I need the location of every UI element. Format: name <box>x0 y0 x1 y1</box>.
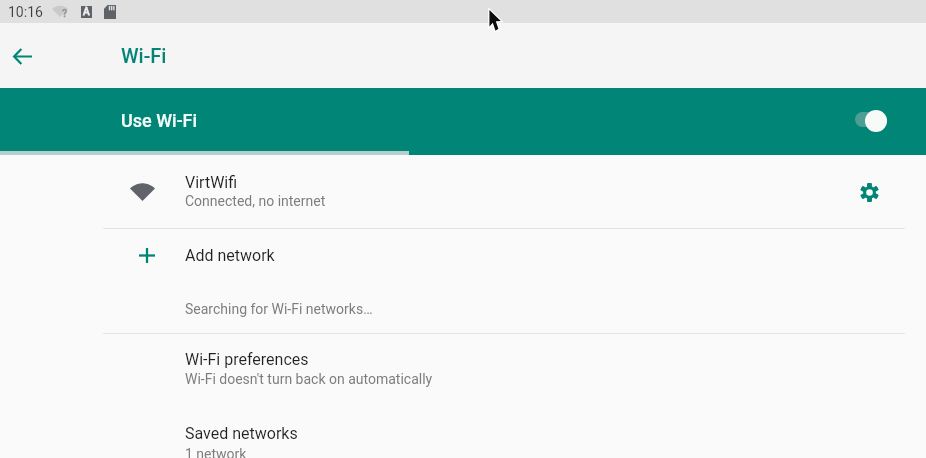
staticText: Searching for Wi-Fi networks… <box>185 301 373 317</box>
button[interactable]: Network settings <box>851 174 888 211</box>
button[interactable]: VirtWifi <box>0 155 926 229</box>
button[interactable]: Wi-Fi preferences <box>0 334 926 406</box>
staticText: Use Wi-Fi <box>121 110 198 131</box>
staticText: Connected, no internet <box>185 193 326 209</box>
staticText: 10:16 <box>8 4 43 20</box>
staticText: Wi-Fi preferences <box>185 350 309 369</box>
button[interactable]: Navigate up <box>2 36 42 76</box>
staticText: Add network <box>185 246 275 265</box>
button[interactable]: Wi-Fi toggle <box>845 103 897 139</box>
button[interactable]: Use Wi-Fi <box>0 88 926 155</box>
staticText: Saved networks <box>185 424 298 443</box>
button[interactable]: Add network <box>0 229 926 286</box>
staticText: A <box>83 6 90 18</box>
button[interactable]: Saved networks <box>0 407 926 458</box>
staticText: 1 network <box>185 446 247 458</box>
staticText: ? <box>62 7 68 20</box>
staticText: Wi-Fi <box>121 44 167 67</box>
staticText: Wi-Fi doesn't turn back on automatically <box>185 371 433 387</box>
staticText: VirtWifi <box>185 173 238 192</box>
